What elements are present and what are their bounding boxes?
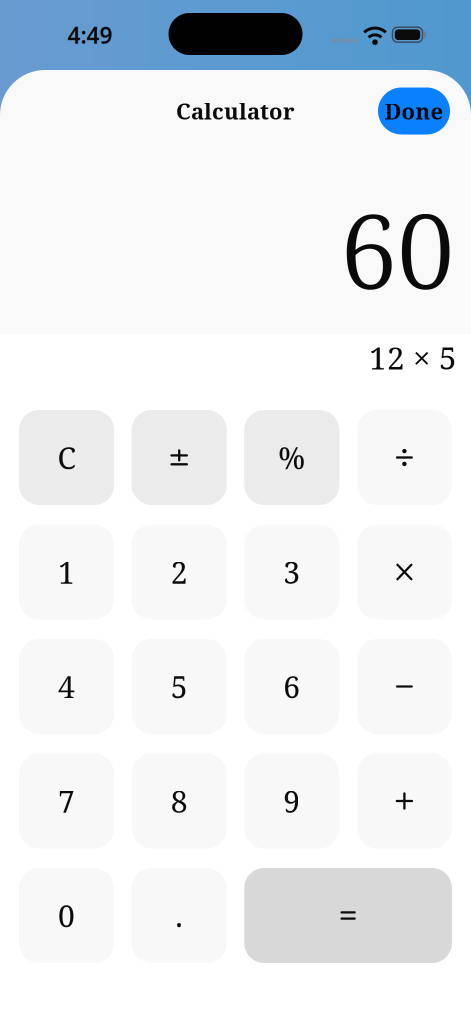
button[interactable]: 0 (19, 868, 114, 963)
button[interactable]: % (244, 410, 339, 505)
button[interactable]: 7 (19, 753, 114, 848)
staticText: . (175, 895, 183, 936)
button[interactable]: Add (357, 753, 452, 848)
button[interactable]: 3 (244, 524, 339, 619)
staticText: 60 (340, 179, 454, 319)
staticText: 8 (171, 781, 188, 821)
button[interactable]: 8 (132, 753, 227, 848)
button[interactable]: Plus Minus (132, 410, 227, 505)
button[interactable]: Multiply (357, 524, 452, 619)
staticText: 3 (283, 552, 300, 592)
staticText: 6 (283, 666, 300, 707)
staticText: 7 (58, 781, 75, 821)
staticText: 1 (58, 552, 75, 592)
staticText: 4 (58, 666, 75, 707)
button[interactable]: 6 (244, 639, 339, 734)
button[interactable]: Equals (244, 868, 452, 963)
staticText: 2 (171, 552, 188, 592)
button[interactable]: Done (378, 87, 450, 134)
staticText: 12 × 5 (369, 336, 457, 379)
button[interactable]: 4 (19, 639, 114, 734)
button[interactable]: C (19, 410, 114, 505)
staticText: 0 (58, 895, 75, 936)
staticText: Calculator (176, 96, 295, 126)
staticText: Done (384, 96, 443, 126)
staticText: C (58, 437, 76, 478)
staticText: % (278, 437, 305, 478)
staticText: 5 (171, 666, 188, 707)
staticText: 9 (283, 781, 300, 821)
button[interactable]: 2 (132, 524, 227, 619)
button[interactable]: Subtract (357, 639, 452, 734)
button[interactable]: Divide (357, 410, 452, 505)
staticText: 4:49 (67, 20, 112, 50)
button[interactable]: 5 (132, 639, 227, 734)
button[interactable]: 1 (19, 524, 114, 619)
button[interactable]: 9 (244, 753, 339, 848)
button[interactable]: . (132, 868, 227, 963)
